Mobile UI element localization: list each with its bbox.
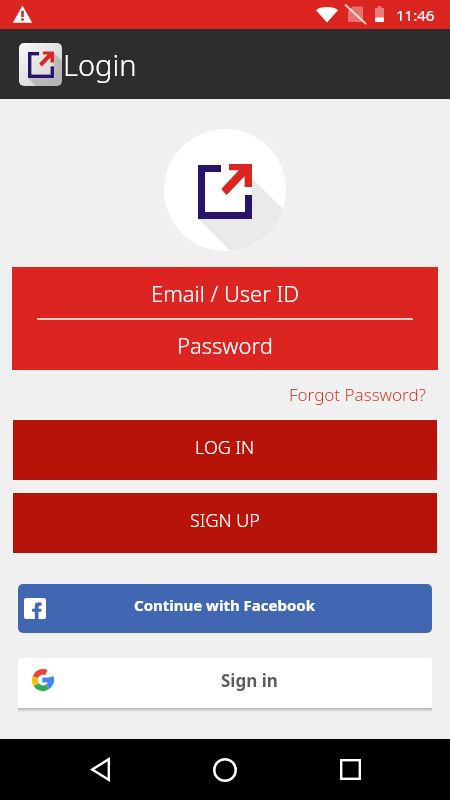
staticText: Sign in [221,669,278,692]
button[interactable]: Home [195,739,255,800]
button[interactable]: SIGN UP [13,493,437,553]
button[interactable]: Password [12,320,438,370]
staticText: Password [177,330,273,360]
staticText: LOG IN [195,435,255,460]
staticText: Email / User ID [151,278,300,308]
button[interactable]: App logo [19,43,62,86]
staticText: Forgot Password? [289,383,426,406]
staticText: 11:46 [396,5,435,25]
button[interactable]: Continue with Facebook [18,584,432,633]
staticText: Login [63,45,137,84]
button[interactable]: Recents [320,739,380,800]
button[interactable]: Forgot Password? [289,383,426,406]
button[interactable]: Sign in [18,658,432,708]
button[interactable]: Back [70,739,130,800]
staticText: SIGN UP [190,508,260,533]
button[interactable]: Email / User ID [12,267,438,318]
button[interactable]: LOG IN [13,420,437,480]
staticText: Continue with Facebook [134,595,316,615]
